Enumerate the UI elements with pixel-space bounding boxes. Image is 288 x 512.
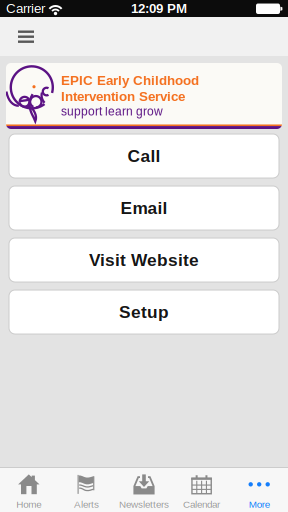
button[interactable]: Call	[9, 134, 279, 178]
button[interactable]: Alerts	[58, 468, 115, 512]
staticText: 12:09 PM	[131, 1, 187, 16]
staticText: More	[249, 499, 270, 510]
staticText: Setup	[119, 302, 169, 322]
staticText: Intervention Service	[61, 89, 185, 104]
button[interactable]: Setup	[9, 290, 279, 334]
staticText: Calendar	[183, 499, 220, 510]
button[interactable]: Calendar	[173, 468, 230, 512]
staticText: Alerts	[74, 499, 99, 510]
staticText: Carrier	[6, 1, 45, 16]
staticText: EPIC Early Childhood	[61, 73, 199, 88]
staticText: support learn grow	[61, 105, 163, 118]
button[interactable]: Newsletters	[115, 468, 173, 512]
button[interactable]: Home	[0, 468, 58, 512]
staticText: Newsletters	[119, 499, 169, 510]
button[interactable]: Email	[9, 186, 279, 230]
staticText: Email	[120, 198, 167, 218]
button[interactable]: Visit Website	[9, 238, 279, 282]
button[interactable]: More	[230, 468, 288, 512]
staticText: Home	[16, 499, 41, 510]
staticText: Call	[127, 146, 160, 166]
button[interactable]: Menu	[6, 17, 46, 55]
staticText: Visit Website	[89, 250, 199, 270]
